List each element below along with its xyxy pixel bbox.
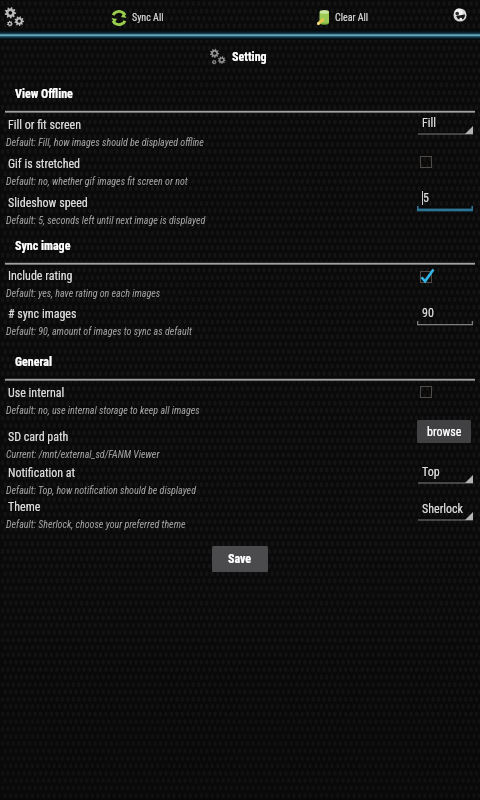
staticText: # sync images: [8, 307, 77, 321]
staticText: Use internal: [8, 386, 65, 400]
button[interactable]: Unchecked: [415, 151, 437, 173]
staticText: Sync image: [15, 239, 71, 253]
staticText: Default: Top, how notification should be…: [6, 485, 196, 497]
button[interactable]: browse: [417, 420, 471, 443]
button[interactable]: Unchecked: [415, 381, 437, 403]
staticText: Clear All: [335, 12, 369, 24]
staticText: 5: [423, 191, 429, 205]
button[interactable]: [0, 460, 480, 498]
staticText: Default: 90, amount of images to sync as…: [6, 326, 192, 338]
staticText: Fill or fit screen: [8, 118, 82, 132]
staticText: Default: yes, have rating on each images: [6, 288, 161, 300]
staticText: Top: [422, 465, 440, 479]
button[interactable]: [0, 424, 480, 462]
staticText: Sherlock: [422, 502, 464, 516]
staticText: Slideshow speed: [8, 196, 88, 210]
button[interactable]: Text field: [417, 188, 473, 212]
staticText: Default: Fill, how images should be disp…: [6, 137, 204, 149]
button[interactable]: Settings: [0, 0, 34, 33]
staticText: browse: [427, 425, 462, 439]
staticText: Fill: [422, 116, 437, 130]
staticText: Include rating: [8, 269, 73, 283]
staticText: Theme: [8, 500, 41, 514]
staticText: Current: /mnt/external_sd/FANM Viewer: [6, 449, 160, 461]
button[interactable]: [0, 151, 480, 189]
button[interactable]: Sync All: [110, 6, 164, 29]
staticText: Sync All: [132, 12, 164, 24]
button[interactable]: [0, 301, 480, 339]
button[interactable]: [0, 494, 480, 532]
staticText: Setting: [232, 50, 267, 64]
staticText: Save: [228, 552, 252, 566]
button[interactable]: [0, 112, 480, 150]
button[interactable]: Sherlock: [417, 500, 473, 523]
staticText: SD card path: [8, 430, 69, 444]
staticText: Notification at: [8, 466, 76, 480]
button[interactable]: [0, 380, 480, 418]
staticText: Default: no, use internal storage to kee…: [6, 405, 200, 417]
staticText: 90: [422, 306, 434, 320]
button[interactable]: Text field: [417, 303, 473, 327]
button[interactable]: Top: [417, 463, 473, 486]
staticText: View Offline: [15, 87, 73, 101]
button[interactable]: Save: [212, 546, 268, 572]
button[interactable]: Clear All: [317, 5, 369, 30]
button[interactable]: [0, 263, 480, 301]
staticText: Default: 5, seconds left until next imag…: [6, 215, 206, 227]
button[interactable]: Account: [447, 3, 473, 29]
button[interactable]: Fill: [417, 114, 473, 137]
staticText: General: [15, 355, 52, 369]
staticText: Default: no, whether gif images fit scre…: [6, 176, 188, 188]
button[interactable]: [0, 190, 480, 228]
button[interactable]: Checked: [415, 266, 437, 288]
button[interactable]: Setting: [207, 46, 267, 68]
staticText: Gif is stretched: [8, 157, 81, 171]
staticText: Default: Sherlock, choose your preferred…: [6, 519, 186, 531]
